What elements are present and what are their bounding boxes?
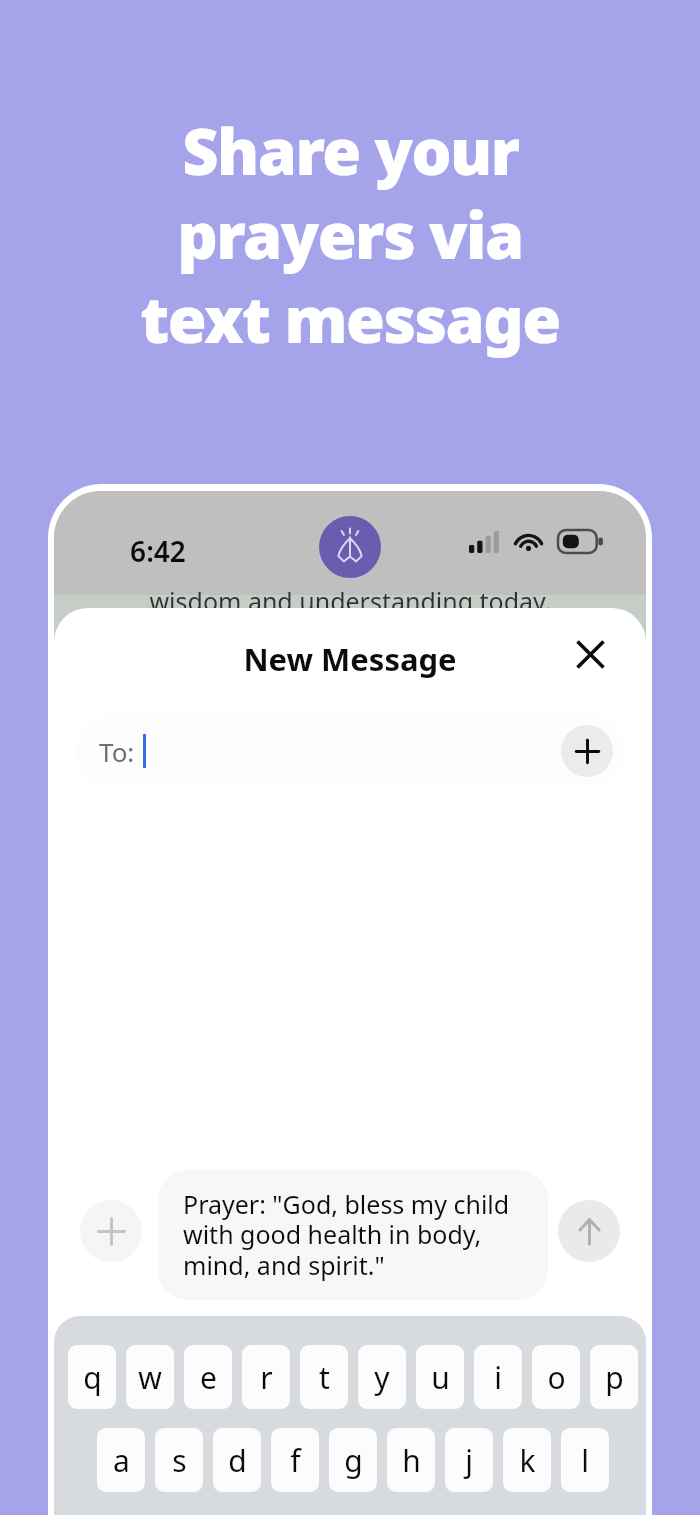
staticText: t [319,1357,330,1398]
button[interactable]: e [184,1345,232,1409]
staticText: Prayer: "God, bless my child with good h… [183,1187,523,1283]
staticText: text message [140,276,560,360]
staticText: prayers via [177,192,523,276]
button[interactable]: t [300,1345,348,1409]
button[interactable]: y [358,1345,406,1409]
staticText: y [374,1357,390,1398]
button[interactable]: Send [558,1200,620,1262]
staticText: f [290,1440,301,1481]
staticText: i [494,1357,502,1398]
staticText: d [228,1440,247,1481]
staticText: u [431,1357,450,1398]
button[interactable]: Prayer app [319,516,381,578]
staticText: a [113,1440,130,1481]
button[interactable]: i [474,1345,522,1409]
button[interactable]: o [532,1345,580,1409]
staticText: p [605,1357,624,1398]
button[interactable]: q [68,1345,116,1409]
staticText: l [581,1440,589,1481]
staticText: k [519,1440,536,1481]
staticText: q [83,1357,102,1398]
button[interactable]: Prayer: "God, bless my child with good h… [158,1170,548,1300]
staticText: j [465,1440,473,1481]
staticText: 6:42 [130,532,186,570]
staticText: New Message [243,638,457,680]
button[interactable]: w [126,1345,174,1409]
staticText: r [260,1357,273,1398]
button[interactable]: r [242,1345,290,1409]
button[interactable]: h [387,1428,435,1492]
button[interactable]: To: [76,715,624,787]
button[interactable]: a [97,1428,145,1492]
button[interactable]: f [271,1428,319,1492]
staticText: wisdom and understanding today. [149,584,552,618]
button[interactable]: Close [558,622,622,686]
button[interactable]: p [590,1345,638,1409]
button[interactable]: g [329,1428,377,1492]
staticText: h [402,1440,421,1481]
staticText: w [138,1357,162,1398]
button[interactable]: s [155,1428,203,1492]
staticText: o [547,1357,566,1398]
button[interactable]: Add contact [561,725,613,777]
button[interactable]: Add attachment [80,1200,142,1262]
staticText: Share your [182,108,519,192]
button[interactable]: j [445,1428,493,1492]
button[interactable]: d [213,1428,261,1492]
staticText: e [200,1357,217,1398]
staticText: s [172,1440,187,1481]
button[interactable]: l [561,1428,609,1492]
staticText: g [344,1440,363,1481]
button[interactable]: k [503,1428,551,1492]
staticText: To: [99,734,135,769]
button[interactable]: u [416,1345,464,1409]
